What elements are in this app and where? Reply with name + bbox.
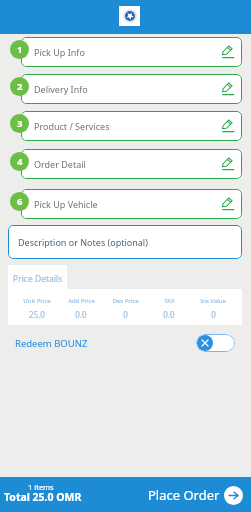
staticText: 25.0 — [29, 309, 45, 320]
button[interactable]: Place Order — [148, 485, 243, 504]
staticText: 1 — [17, 43, 23, 56]
staticText: Des Price — [112, 297, 139, 305]
staticText: Pick Up Info — [34, 46, 85, 58]
staticText: 3 — [17, 117, 23, 130]
staticText: 4 — [17, 155, 23, 168]
button[interactable]: Order Detail — [0, 149, 251, 179]
staticText: 0.0 — [163, 309, 175, 320]
staticText: 0 — [211, 309, 216, 320]
staticText: Description or Notes (optional) — [18, 236, 148, 248]
staticText: Total 25.0 OMR — [4, 490, 82, 504]
staticText: Pick Up Vehicle — [34, 198, 98, 210]
staticText: 1 items — [28, 482, 54, 492]
button[interactable]: App logo — [119, 6, 140, 26]
button[interactable]: Price Details — [8, 265, 67, 289]
staticText: Redeem BOUNZ — [15, 337, 88, 350]
staticText: Add Price — [68, 297, 95, 305]
staticText: TAX — [164, 297, 175, 305]
staticText: Ins Value — [200, 297, 226, 305]
button[interactable]: Delivery Info — [0, 74, 251, 104]
button[interactable]: Redeem BOUNZ toggle — [196, 334, 235, 352]
button[interactable]: Product / Services — [0, 111, 251, 141]
staticText: Order Detail — [34, 158, 86, 170]
staticText: 2 — [17, 80, 23, 93]
button[interactable]: Pick Up Vehicle — [0, 189, 251, 219]
staticText: Product / Services — [34, 120, 110, 132]
staticText: 0 — [123, 309, 128, 320]
staticText: 0.0 — [75, 309, 87, 320]
staticText: Delivery Info — [34, 83, 88, 95]
button[interactable]: Description or Notes (optional) — [8, 225, 242, 259]
staticText: 6 — [17, 195, 23, 208]
staticText: Place Order — [148, 486, 220, 504]
staticText: Price Details — [13, 273, 63, 285]
staticText: Unit Price — [23, 297, 51, 305]
button[interactable]: Pick Up Info — [0, 37, 251, 67]
